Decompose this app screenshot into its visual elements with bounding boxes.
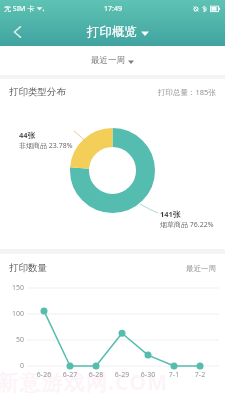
staticText: 打印概览 bbox=[87, 24, 137, 40]
staticText: 7-1 bbox=[161, 370, 187, 380]
staticText: 打印总量：185张 bbox=[158, 87, 216, 97]
staticText: 44张 bbox=[19, 130, 36, 140]
staticText: 0 bbox=[0, 361, 24, 371]
staticText: 6-27 bbox=[57, 370, 83, 380]
staticText: 6-30 bbox=[135, 370, 161, 380]
button[interactable]: Back bbox=[0, 17, 34, 46]
staticText: 6-28 bbox=[83, 370, 109, 380]
staticText: 打印数量 bbox=[9, 262, 47, 274]
staticText: 50 bbox=[0, 335, 24, 345]
staticText: 最近一周 bbox=[91, 55, 125, 66]
staticText: 100 bbox=[0, 309, 24, 319]
staticText: 最近一周 bbox=[186, 264, 216, 273]
button[interactable]: 最近一周 bbox=[85, 52, 140, 69]
staticText: 无 SIM 卡 bbox=[4, 4, 35, 14]
button[interactable]: 打印概览 bbox=[83, 22, 153, 42]
staticText: 17:49 bbox=[104, 4, 122, 14]
staticText: 6-29 bbox=[109, 370, 135, 380]
staticText: 新意游戏网.COM bbox=[0, 368, 222, 397]
staticText: 烟草商品 76.22% bbox=[160, 220, 214, 230]
staticText: 非烟商品 23.78% bbox=[19, 141, 73, 151]
staticText: 141张 bbox=[160, 209, 181, 219]
staticText: 150 bbox=[0, 283, 24, 293]
staticText: 打印类型分布 bbox=[9, 86, 66, 98]
staticText: 7-2 bbox=[187, 370, 213, 380]
staticText: 6-26 bbox=[31, 370, 57, 380]
